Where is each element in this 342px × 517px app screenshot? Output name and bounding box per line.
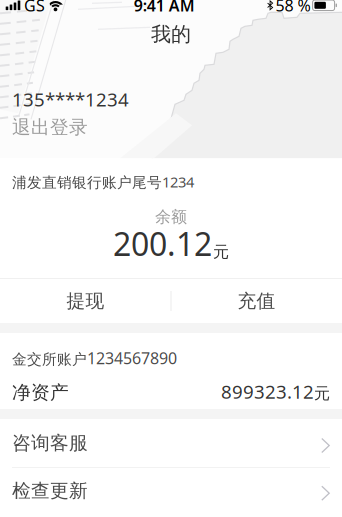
staticText: 净资产 <box>12 381 69 404</box>
staticText: 899323.12 <box>221 379 314 404</box>
staticText: 提现 <box>66 289 104 312</box>
button[interactable]: 提现 <box>0 279 171 323</box>
staticText: 充值 <box>237 289 275 312</box>
staticText: 检查更新 <box>12 479 88 502</box>
staticText: 咨询客服 <box>12 431 88 454</box>
staticText: 58 % <box>276 0 311 16</box>
staticText: 200.12 <box>113 222 212 265</box>
staticText: 浦发直销银行账户尾号 <box>12 174 162 192</box>
staticText: 余额 <box>155 207 187 227</box>
staticText: 元 <box>314 383 330 403</box>
staticText: 135****1234 <box>12 87 129 112</box>
button[interactable]: 检查更新 <box>0 468 342 514</box>
staticText: 9:41 AM <box>134 0 195 16</box>
button[interactable]: 咨询客服 <box>0 419 342 467</box>
staticText: 我的 <box>151 22 191 47</box>
staticText: 元 <box>213 242 229 262</box>
staticText: 退出登录 <box>12 116 88 139</box>
button[interactable]: 退出登录 <box>12 117 88 137</box>
staticText: 金交所账户 <box>12 350 87 368</box>
staticText: 1234 <box>162 172 194 191</box>
staticText: 1234567890 <box>87 347 177 369</box>
staticText: GS <box>24 0 45 16</box>
button[interactable]: 充值 <box>171 279 342 323</box>
